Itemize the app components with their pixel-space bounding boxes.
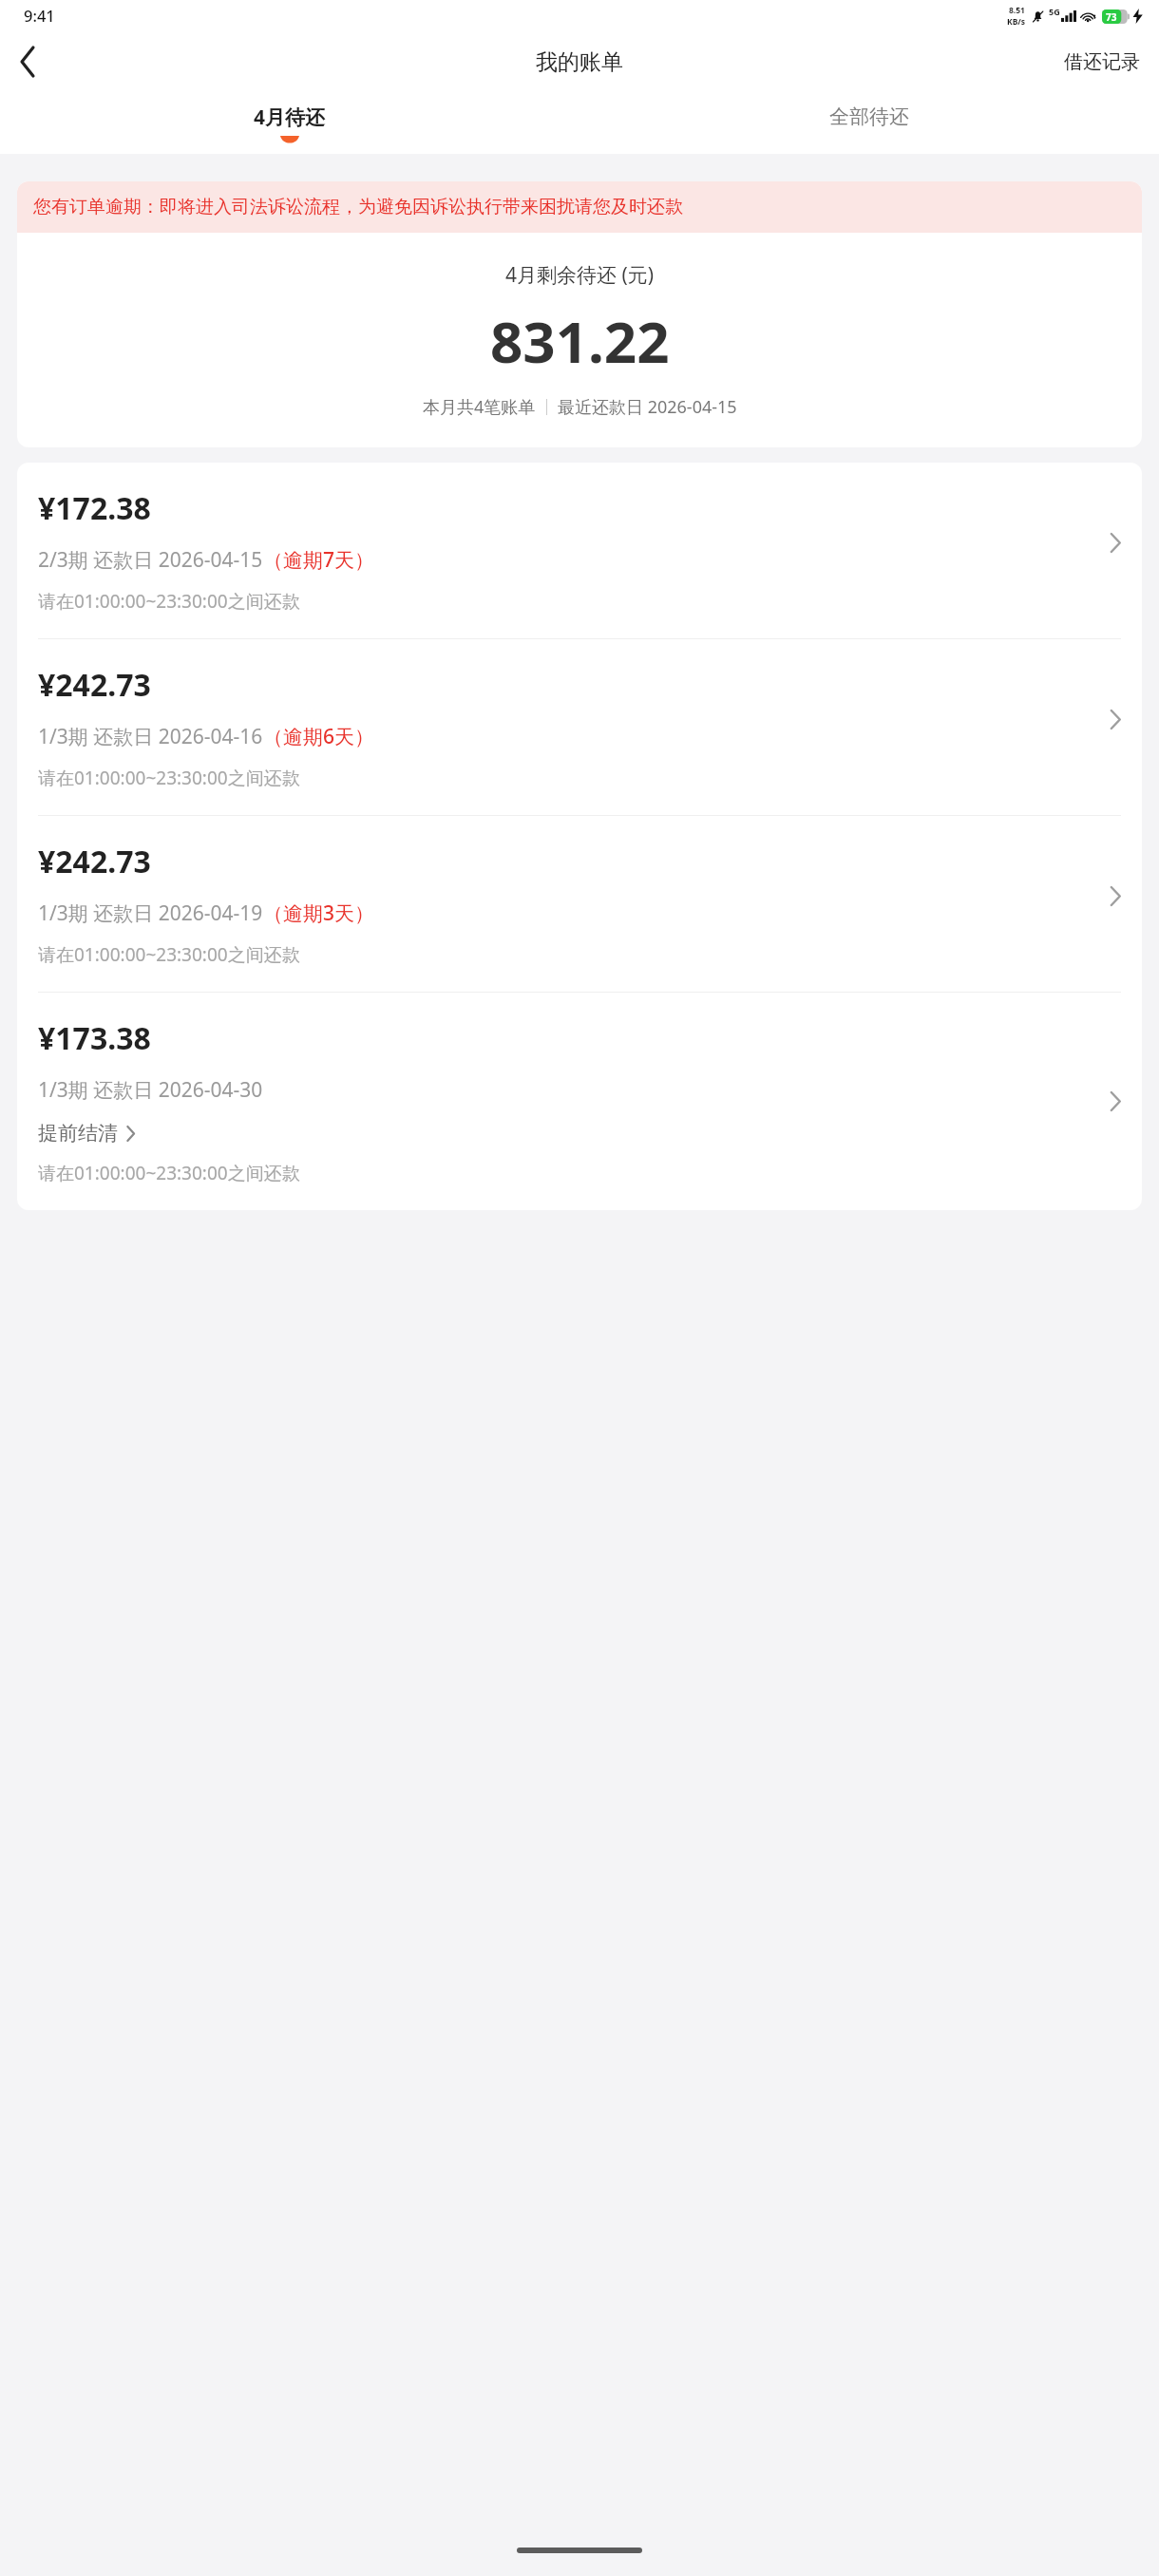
staticText: （逾期6天） bbox=[263, 723, 375, 750]
staticText: 4月剩余待还 (元) bbox=[505, 261, 655, 289]
button[interactable]: ¥242.73 bbox=[17, 816, 1142, 992]
staticText: 我的账单 bbox=[536, 48, 623, 76]
button[interactable]: ¥242.73 bbox=[17, 639, 1142, 815]
staticText: ¥242.73 bbox=[38, 664, 151, 706]
staticText: 73 bbox=[1106, 10, 1117, 24]
staticText: 全部待还 bbox=[829, 104, 909, 129]
staticText: 9:41 bbox=[24, 5, 55, 26]
staticText: 831.22 bbox=[490, 302, 670, 380]
staticText: 8.51 bbox=[1009, 5, 1025, 16]
button[interactable]: Back bbox=[0, 34, 55, 89]
staticText: 请在01:00:00~23:30:00之间还款 bbox=[38, 589, 300, 614]
staticText: 您有订单逾期：即将进入司法诉讼流程，为避免因诉讼执行带来困扰请您及时还款 bbox=[33, 196, 683, 218]
staticText: 5G bbox=[1049, 6, 1060, 17]
staticText: 1/3期 还款日 2026-04-19 bbox=[38, 900, 263, 927]
button[interactable]: 提前结清 bbox=[38, 1121, 135, 1146]
staticText: ¥173.38 bbox=[38, 1017, 151, 1059]
staticText: ¥172.38 bbox=[38, 487, 151, 529]
button[interactable]: 全部待还 bbox=[579, 91, 1159, 154]
staticText: 最近还款日 2026-04-15 bbox=[558, 395, 737, 419]
staticText: 1/3期 还款日 2026-04-30 bbox=[38, 1076, 263, 1104]
staticText: 2/3期 还款日 2026-04-15 bbox=[38, 546, 263, 574]
button[interactable]: 借还记录 bbox=[1045, 41, 1159, 84]
staticText: 借还记录 bbox=[1064, 50, 1140, 74]
staticText: 请在01:00:00~23:30:00之间还款 bbox=[38, 1161, 300, 1185]
staticText: 1/3期 还款日 2026-04-16 bbox=[38, 723, 263, 750]
button[interactable]: ¥173.38 bbox=[17, 993, 1142, 1210]
button[interactable]: ¥172.38 bbox=[17, 463, 1142, 638]
staticText: （逾期3天） bbox=[263, 900, 375, 927]
staticText: ¥242.73 bbox=[38, 841, 151, 882]
staticText: KB/s bbox=[1007, 16, 1026, 28]
staticText: 请在01:00:00~23:30:00之间还款 bbox=[38, 942, 300, 967]
button[interactable]: 4月待还 bbox=[0, 91, 579, 154]
staticText: 提前结清 bbox=[38, 1121, 118, 1146]
staticText: 本月共4笔账单 bbox=[423, 395, 536, 419]
staticText: 请在01:00:00~23:30:00之间还款 bbox=[38, 766, 300, 790]
staticText: 4月待还 bbox=[254, 104, 326, 131]
staticText: （逾期7天） bbox=[263, 546, 375, 574]
